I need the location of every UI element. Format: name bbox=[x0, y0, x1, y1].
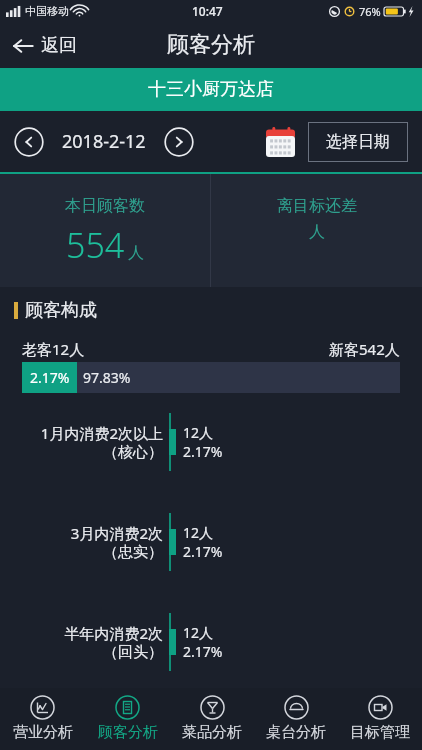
button[interactable]: 3月内消费2次 bbox=[0, 513, 422, 571]
staticText: 12人 bbox=[183, 523, 214, 542]
staticText: 2.17% bbox=[183, 542, 223, 561]
staticText: （核心） bbox=[103, 443, 163, 462]
staticText: 97.83% bbox=[83, 368, 131, 387]
button[interactable]: 十三小厨万达店 bbox=[0, 68, 422, 111]
button[interactable]: 返回 bbox=[0, 30, 87, 61]
button[interactable]: 半年内消费2次 bbox=[0, 613, 422, 671]
staticText: 10:47 bbox=[192, 3, 223, 19]
staticText: 中国移动 bbox=[25, 4, 69, 18]
staticText: 目标管理 bbox=[350, 723, 410, 742]
staticText: 离目标还差 bbox=[277, 196, 357, 216]
staticText: 人 bbox=[128, 243, 144, 263]
button[interactable]: 营业分析 bbox=[0, 688, 85, 750]
staticText: 返回 bbox=[41, 34, 77, 57]
other: 返回 bbox=[12, 35, 34, 57]
button[interactable]: 离目标还差 bbox=[211, 174, 422, 287]
button[interactable]: 下一天 bbox=[164, 127, 194, 157]
button[interactable]: 菜品分析 bbox=[170, 688, 254, 750]
staticText: 本日顾客数 bbox=[65, 196, 145, 216]
staticText: 顾客分析 bbox=[98, 723, 158, 742]
button[interactable]: 桌台分析 bbox=[254, 688, 338, 750]
staticText: 菜品分析 bbox=[182, 723, 242, 742]
staticText: 人 bbox=[309, 222, 325, 242]
staticText: 2.17% bbox=[183, 642, 223, 661]
button[interactable]: 本日顾客数 bbox=[0, 174, 210, 287]
button[interactable]: 1月内消费2次以上 bbox=[0, 413, 422, 471]
staticText: 12人 bbox=[183, 423, 214, 442]
staticText: 12人 bbox=[183, 623, 214, 642]
button[interactable]: 选择日期 bbox=[308, 122, 408, 162]
staticText: 76% bbox=[359, 4, 381, 19]
staticText: 2.17% bbox=[30, 368, 70, 387]
staticText: （忠实） bbox=[103, 543, 163, 562]
staticText: 顾客分析 bbox=[167, 31, 255, 59]
staticText: 新客542人 bbox=[329, 339, 400, 359]
staticText: 2.17% bbox=[183, 442, 223, 461]
staticText: 营业分析 bbox=[13, 723, 73, 742]
staticText: 3月内消费2次 bbox=[70, 523, 163, 543]
staticText: 1月内消费2次以上 bbox=[40, 423, 163, 443]
staticText: 十三小厨万达店 bbox=[148, 78, 274, 101]
staticText: 顾客构成 bbox=[25, 299, 97, 322]
staticText: 选择日期 bbox=[326, 132, 390, 152]
button[interactable]: 2.17% bbox=[22, 362, 400, 393]
staticText: 老客12人 bbox=[22, 339, 85, 359]
button[interactable]: 目标管理 bbox=[338, 688, 422, 750]
staticText: 半年内消费2次 bbox=[64, 623, 163, 643]
staticText: 554 bbox=[66, 222, 125, 268]
button[interactable]: 上一天 bbox=[14, 127, 44, 157]
button[interactable]: 顾客分析 bbox=[85, 688, 170, 750]
staticText: 2018-2-12 bbox=[62, 129, 146, 154]
staticText: （回头） bbox=[103, 643, 163, 662]
button[interactable]: 日历 bbox=[263, 124, 298, 160]
staticText: 桌台分析 bbox=[266, 723, 326, 742]
